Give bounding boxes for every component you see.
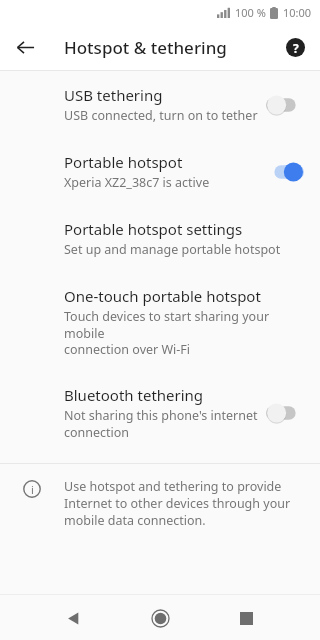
button[interactable]: Home (140, 598, 180, 638)
button[interactable]: Recent apps (226, 598, 266, 638)
staticText: One-touch portable hotspot (64, 286, 261, 306)
staticText: 10:00 (283, 5, 312, 20)
staticText: Not sharing this phone's internet connec… (64, 407, 258, 440)
button[interactable]: Toggle off (266, 401, 304, 425)
button[interactable]: Portable hotspot (0, 138, 320, 205)
staticText: Touch devices to start sharing your mobi… (64, 308, 304, 357)
staticText: Portable hotspot settings (64, 219, 243, 239)
staticText: Xperia XZ2_38c7 is active (64, 174, 210, 191)
button[interactable]: Portable hotspot settings (0, 205, 320, 272)
staticText: USB tethering (64, 85, 163, 105)
button[interactable]: Toggle off (266, 93, 304, 117)
staticText: Bluetooth tethering (64, 385, 204, 405)
staticText: ? (293, 40, 299, 56)
staticText: Hotspot & tethering (64, 36, 227, 59)
staticText: Portable hotspot (64, 152, 183, 172)
staticText: Use hotspot and tethering to provide Int… (64, 478, 291, 529)
button[interactable]: Toggle on (266, 160, 304, 184)
button[interactable]: Bluetooth tethering (0, 371, 320, 454)
button[interactable]: Help (276, 28, 314, 66)
button[interactable]: Back (4, 26, 46, 68)
staticText: i (31, 482, 34, 497)
staticText: Set up and manage portable hotspot (64, 241, 281, 258)
staticText: USB connected, turn on to tether (64, 107, 258, 124)
staticText: 100 % (235, 5, 266, 20)
button[interactable]: USB tethering (0, 71, 320, 138)
button[interactable]: Back (53, 598, 93, 638)
button[interactable]: One-touch portable hotspot (0, 272, 320, 371)
